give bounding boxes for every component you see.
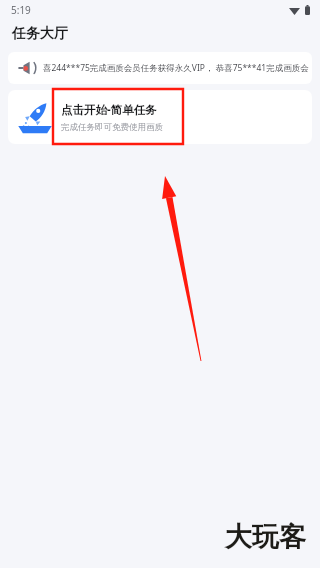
staticText: 5:19 [11, 3, 31, 17]
staticText: 大玩客 [225, 520, 306, 554]
staticText: 任务大厅 [12, 25, 68, 43]
staticText: 喜244***75完成画质会员任务获得永久VIP， 恭喜75***41完成画质会… [43, 62, 312, 74]
staticText: 点击开始-简单任务 [61, 102, 157, 118]
button[interactable]: 喜244***75完成画质会员任务获得永久VIP， 恭喜75***41完成画质会… [8, 52, 312, 84]
staticText: 完成任务即可免费使用画质 [61, 122, 163, 133]
button[interactable]: 点击开始-简单任务 [8, 90, 312, 144]
